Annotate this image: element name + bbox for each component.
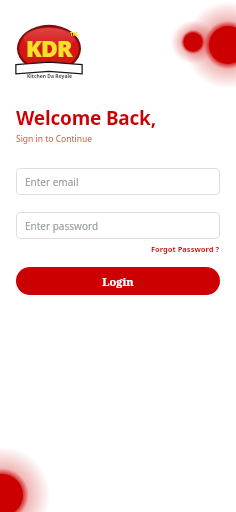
- staticText: KDR: [26, 32, 72, 63]
- staticText: Enter password: [25, 219, 99, 233]
- button[interactable]: Forgot Password ?: [150, 243, 220, 255]
- staticText: Welcome Back,: [16, 105, 156, 131]
- button[interactable]: Login: [16, 267, 220, 295]
- staticText: Kitchen Da Royale: [27, 73, 72, 80]
- staticText: Sign in to Continue: [16, 133, 92, 145]
- staticText: Login: [102, 274, 134, 289]
- staticText: Forgot Password ?: [151, 244, 219, 254]
- other: KDR Kitchen Da Royale logo: [13, 23, 85, 85]
- staticText: TM: [70, 31, 78, 38]
- button[interactable]: Enter email: [16, 168, 220, 195]
- button[interactable]: Enter password: [16, 212, 220, 239]
- staticText: Enter email: [25, 175, 79, 189]
